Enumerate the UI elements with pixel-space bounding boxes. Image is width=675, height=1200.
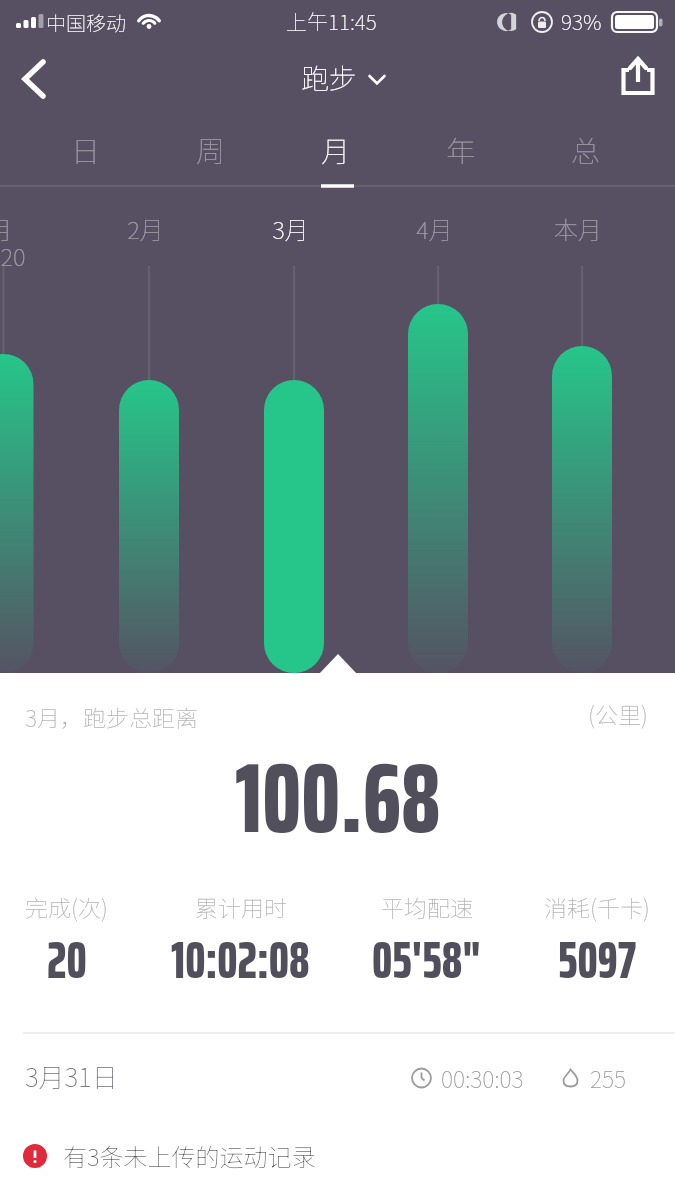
staticText: 累计用时 (195, 890, 287, 923)
button[interactable]: 消耗(千卡) (544, 890, 650, 1003)
staticText: 05'58" (372, 920, 481, 1000)
staticText: 本月 (554, 211, 602, 246)
staticText: 5097 (558, 920, 637, 1000)
staticText: 完成(次) (25, 890, 108, 923)
staticText: 月 (321, 128, 351, 170)
button[interactable]: 00:30:03 (411, 1061, 626, 1094)
staticText: 3月31日 (25, 1057, 118, 1095)
staticText: 2月 (127, 211, 164, 246)
button[interactable]: 平均配速 (372, 890, 481, 1003)
staticText: 年 (446, 128, 476, 170)
staticText: 3月 (272, 211, 309, 246)
staticText: 日 (71, 128, 101, 170)
staticText: 4月 (416, 211, 453, 246)
button[interactable]: 有3条未上传的运动记录 (23, 1138, 316, 1173)
staticText: 周 (196, 128, 226, 170)
button[interactable]: 2月 (75, 211, 215, 281)
staticText: 月 2020 (0, 211, 26, 273)
button[interactable]: Share (612, 51, 664, 103)
button[interactable]: 日 (42, 110, 130, 186)
staticText: 93% (561, 6, 602, 36)
button[interactable]: 完成(次) (25, 890, 108, 1003)
staticText: 100.68 (235, 721, 441, 875)
staticText: 有3条未上传的运动记录 (63, 1138, 316, 1173)
button[interactable]: 累计用时 (171, 890, 310, 1003)
button[interactable]: 月 2020 (0, 211, 70, 281)
staticText: 255 (590, 1061, 626, 1094)
button[interactable]: 跑步 (301, 57, 386, 98)
staticText: 跑步 (301, 57, 358, 98)
button[interactable]: 总 (542, 110, 630, 186)
button[interactable]: Back (8, 52, 60, 104)
staticText: 上午11:45 (286, 6, 377, 36)
staticText: 消耗(千卡) (544, 890, 650, 923)
button[interactable]: 本月 (508, 211, 648, 281)
staticText: 平均配速 (381, 890, 473, 923)
button[interactable]: 年 (417, 110, 505, 186)
staticText: 总 (571, 128, 601, 170)
button[interactable]: 4月 (364, 211, 504, 281)
staticText: 00:30:03 (441, 1061, 524, 1094)
staticText: 3月，跑步总距离 (25, 700, 198, 733)
staticText: 中国移动 (46, 8, 126, 37)
staticText: 20 (47, 920, 87, 1000)
button[interactable]: 月 (292, 110, 380, 186)
staticText: (公里) (588, 697, 648, 730)
button[interactable]: 周 (167, 110, 255, 186)
button[interactable]: 3月 (220, 211, 360, 281)
staticText: 10:02:08 (171, 920, 310, 1000)
